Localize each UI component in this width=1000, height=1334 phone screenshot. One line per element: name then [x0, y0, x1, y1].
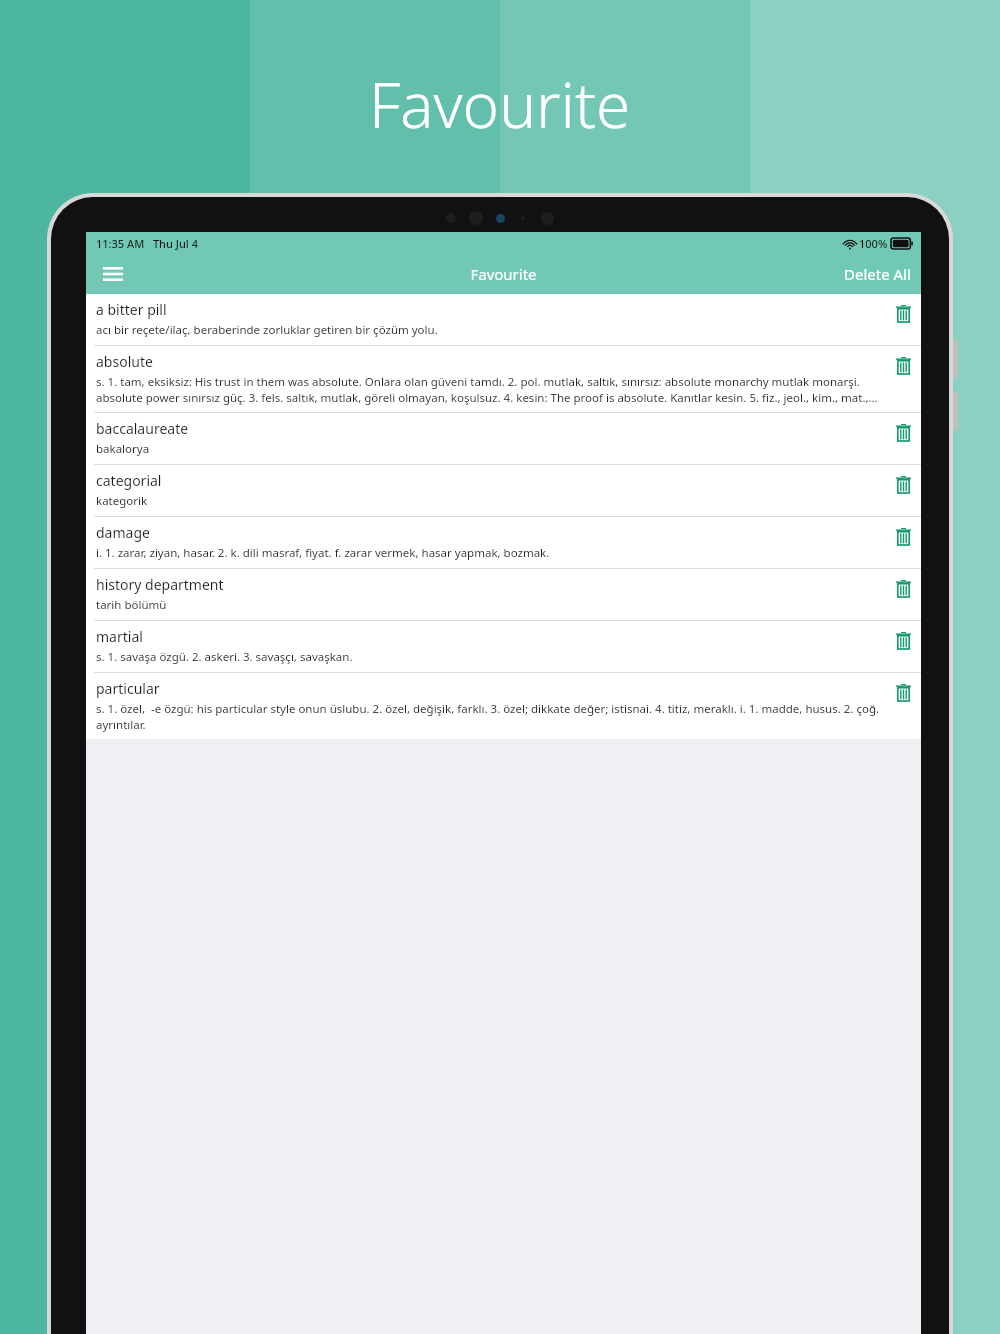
button[interactable]: Delete baccalaureate	[891, 420, 915, 444]
button[interactable]: damage	[86, 516, 921, 568]
staticText: i. 1. zarar, ziyan, hasar. 2. k. dili ma…	[96, 545, 550, 561]
staticText: particular	[96, 679, 160, 698]
button[interactable]: Delete categorial	[891, 472, 915, 496]
button[interactable]: Delete particular	[891, 680, 915, 704]
button[interactable]: Delete All	[834, 256, 921, 292]
button[interactable]: categorial	[86, 464, 921, 516]
button[interactable]: absolute	[86, 345, 921, 412]
button[interactable]: Delete a bitter pill	[891, 301, 915, 325]
staticText: s. 1. savaşa özgü. 2. askeri. 3. savaşçı…	[96, 649, 353, 665]
staticText: 100%	[859, 236, 888, 251]
staticText: acı bir reçete/ilaç, beraberinde zorlukl…	[96, 322, 438, 338]
button[interactable]: martial	[86, 620, 921, 672]
staticText: Favourite	[470, 264, 537, 284]
staticText: absolute	[96, 352, 153, 371]
staticText: categorial	[96, 471, 162, 490]
staticText: damage	[96, 523, 150, 542]
staticText: s. 1. özel, -e özgü: his particular styl…	[96, 701, 885, 732]
button[interactable]: Delete history department	[891, 576, 915, 600]
staticText: kategorik	[96, 493, 148, 509]
staticText: s. 1. tam, eksiksiz: His trust in them w…	[96, 374, 885, 405]
button[interactable]: Delete martial	[891, 628, 915, 652]
staticText: Delete All	[844, 264, 911, 284]
button[interactable]: a bitter pill	[86, 294, 921, 345]
staticText: history department	[96, 575, 224, 594]
staticText: bakalorya	[96, 441, 150, 457]
staticText: martial	[96, 627, 143, 646]
button[interactable]: Delete absolute	[891, 353, 915, 377]
button[interactable]: history department	[86, 568, 921, 620]
staticText: baccalaureate	[96, 419, 189, 438]
staticText: Favourite	[369, 62, 631, 146]
button[interactable]: particular	[86, 672, 921, 739]
button[interactable]: Menu	[94, 255, 132, 293]
staticText: 11:35 AM Thu Jul 4	[96, 236, 198, 251]
button[interactable]: baccalaureate	[86, 412, 921, 464]
button[interactable]: Delete damage	[891, 524, 915, 548]
staticText: a bitter pill	[96, 300, 167, 319]
staticText: tarih bölümü	[96, 597, 167, 613]
